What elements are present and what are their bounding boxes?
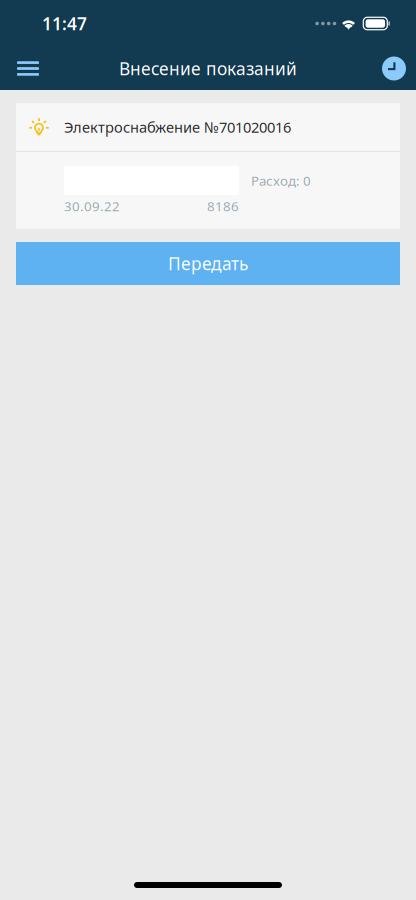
staticText: Внесение показаний: [119, 57, 297, 80]
button[interactable]: Menu: [0, 48, 53, 88]
staticText: Передать: [168, 252, 248, 275]
staticText: Электроснабжение №701020016: [64, 117, 291, 137]
staticText: 8186: [207, 197, 239, 215]
staticText: 30.09.22: [64, 197, 120, 215]
button[interactable]: History: [368, 48, 416, 88]
staticText: 11:47: [42, 12, 87, 35]
button[interactable]: Передать: [16, 242, 400, 285]
staticText: Расход: 0: [251, 172, 311, 189]
